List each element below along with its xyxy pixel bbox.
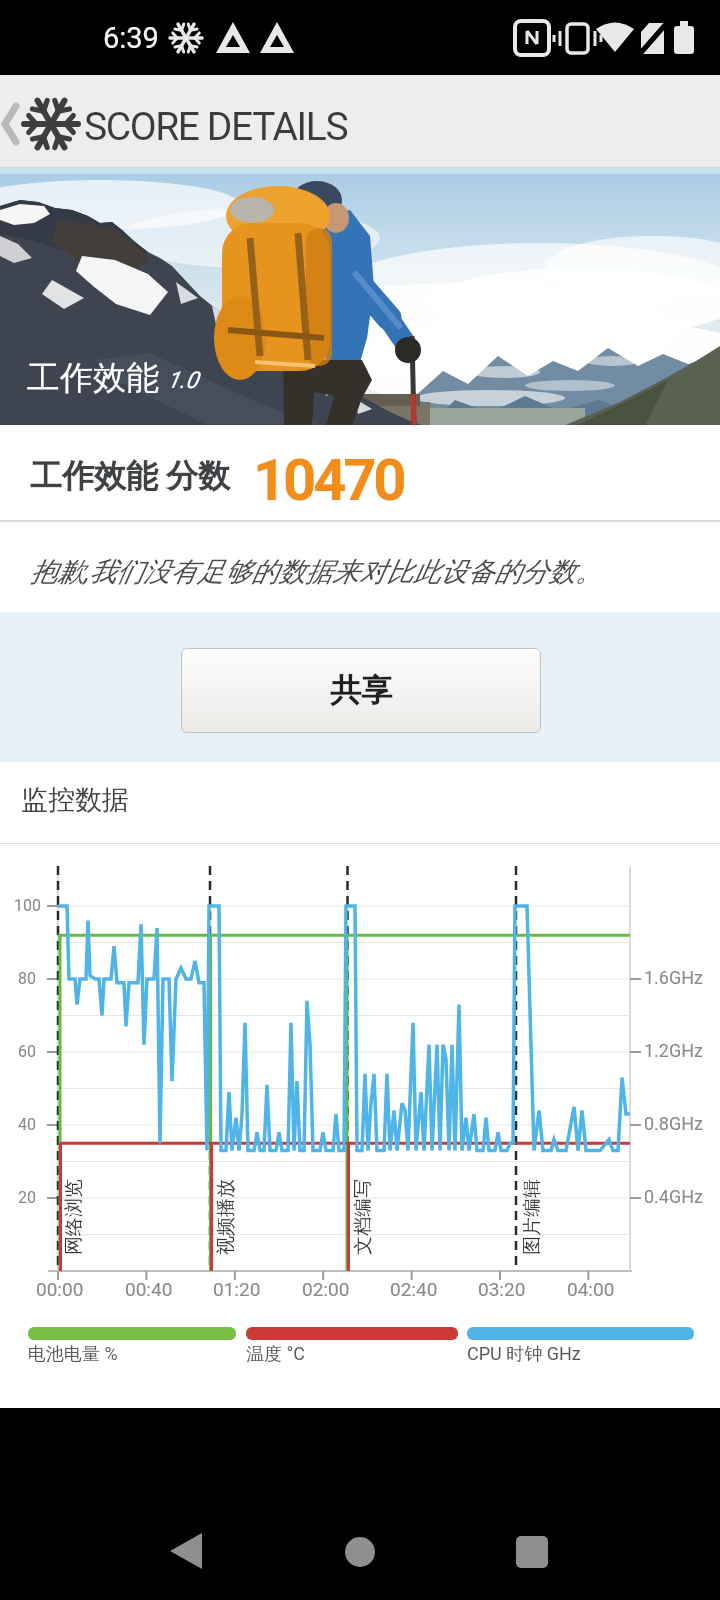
button[interactable]: [324, 1523, 396, 1595]
staticText: 监控数据: [21, 783, 129, 817]
staticText: SCORE DETAILS: [84, 104, 348, 150]
staticText: 0.4GHz: [644, 1186, 704, 1207]
staticText: 01:20: [213, 1278, 261, 1300]
staticText: CPU 时钟 GHz: [467, 1343, 581, 1366]
staticText: 03:20: [478, 1278, 526, 1300]
staticText: 10470: [253, 446, 404, 514]
staticText: 抱歉,我们没有足够的数据来对比此设备的分数。: [30, 555, 603, 589]
staticText: 1.6GHz: [644, 967, 704, 988]
staticText: 电池电量 %: [28, 1343, 118, 1366]
staticText: 1.0: [167, 367, 198, 394]
button[interactable]: [150, 1523, 222, 1595]
staticText: 04:00: [567, 1278, 615, 1300]
staticText: 20: [18, 1188, 36, 1207]
staticText: 60: [18, 1042, 36, 1061]
staticText: 100: [14, 896, 41, 915]
staticText: 视频播放: [214, 1179, 238, 1255]
staticText: 网络浏览: [62, 1179, 86, 1255]
staticText: 1.2GHz: [644, 1040, 704, 1061]
staticText: 00:40: [125, 1278, 173, 1300]
staticText: 00:00: [36, 1278, 84, 1300]
button[interactable]: [494, 1523, 566, 1595]
staticText: 6:39: [103, 21, 159, 55]
staticText: 40: [18, 1115, 36, 1134]
staticText: 02:00: [302, 1278, 350, 1300]
staticText: 80: [18, 969, 36, 988]
staticText: 文档编写: [351, 1179, 375, 1255]
staticText: 02:40: [390, 1278, 438, 1300]
button[interactable]: 共享: [181, 648, 541, 733]
staticText: 图片编辑: [520, 1179, 544, 1255]
staticText: 共享: [330, 671, 392, 710]
staticText: 工作效能: [27, 357, 159, 399]
button[interactable]: [0, 75, 80, 168]
staticText: 0.8GHz: [644, 1113, 704, 1134]
staticText: 温度 °C: [246, 1343, 305, 1366]
staticText: 工作效能 分数: [30, 456, 230, 496]
